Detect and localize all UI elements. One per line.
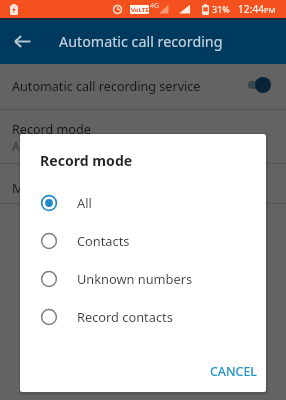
button[interactable]: CANCEL bbox=[200, 351, 266, 392]
staticText: Record mode bbox=[12, 121, 91, 138]
button[interactable]: Record contacts bbox=[20, 298, 266, 336]
staticText: Automatic call recording service bbox=[12, 78, 249, 95]
staticText: Record mode bbox=[40, 151, 133, 170]
button[interactable]: Contacts bbox=[20, 222, 266, 260]
staticText: 31% bbox=[212, 3, 230, 15]
staticText: Automatic call recording bbox=[59, 32, 223, 51]
button[interactable]: Automatic call recording service bbox=[0, 64, 286, 109]
staticText: All bbox=[77, 194, 92, 211]
staticText: Unknown numbers bbox=[77, 270, 193, 287]
staticText: VoLTE bbox=[131, 6, 149, 14]
button[interactable]: Unknown numbers bbox=[20, 260, 266, 298]
staticText: Contacts bbox=[77, 232, 130, 249]
button[interactable]: All bbox=[20, 184, 266, 222]
staticText: CANCEL bbox=[210, 363, 257, 380]
staticText: All bbox=[12, 138, 26, 154]
staticText: 12:44 bbox=[238, 2, 265, 16]
button[interactable]: Back bbox=[0, 19, 44, 63]
button[interactable]: Record mode bbox=[0, 110, 286, 163]
staticText: Record contacts bbox=[77, 308, 173, 325]
staticText: 4G bbox=[150, 1, 160, 11]
staticText: More bbox=[12, 179, 45, 197]
button[interactable]: More bbox=[0, 164, 286, 203]
staticText: PM bbox=[264, 5, 276, 15]
